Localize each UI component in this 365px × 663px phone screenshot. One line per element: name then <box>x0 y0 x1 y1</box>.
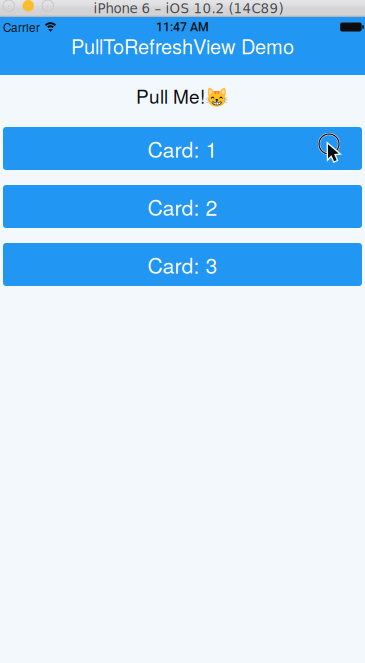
button[interactable]: Card: 1 <box>3 127 362 170</box>
staticText: Card: 1 <box>147 133 217 164</box>
staticText: Carrier <box>3 19 40 35</box>
button[interactable]: Card: 3 <box>3 243 362 286</box>
staticText: Card: 2 <box>147 191 217 222</box>
button[interactable]: Card: 2 <box>3 185 362 228</box>
staticText: 11:47 AM <box>156 20 209 34</box>
staticText: Card: 3 <box>147 249 217 280</box>
staticText: PullToRefreshView Demo <box>71 31 294 60</box>
staticText: Pull Me!😸 <box>136 82 229 109</box>
staticText: iPhone 6 – iOS 10.2 (14C89) <box>93 1 283 16</box>
